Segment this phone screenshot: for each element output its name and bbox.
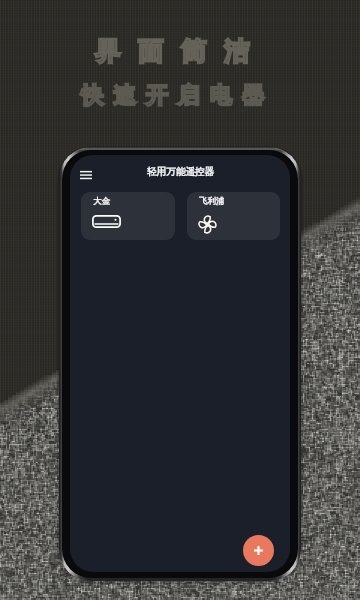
staticText: 飞利浦 <box>199 196 225 207</box>
staticText: 大金 <box>93 196 110 207</box>
staticText: 快速开启电器 <box>81 82 275 110</box>
staticText: 快速开启电器 <box>81 82 275 110</box>
button[interactable]: 大金 <box>81 192 175 240</box>
staticText: 轻用万能遥控器 <box>147 166 215 178</box>
button[interactable]: Menu <box>77 166 95 184</box>
button[interactable]: Add <box>243 535 274 566</box>
staticText: 界面简洁 <box>86 36 258 67</box>
staticText: 界面简洁 <box>86 36 258 67</box>
button[interactable]: 飞利浦 <box>187 192 280 240</box>
